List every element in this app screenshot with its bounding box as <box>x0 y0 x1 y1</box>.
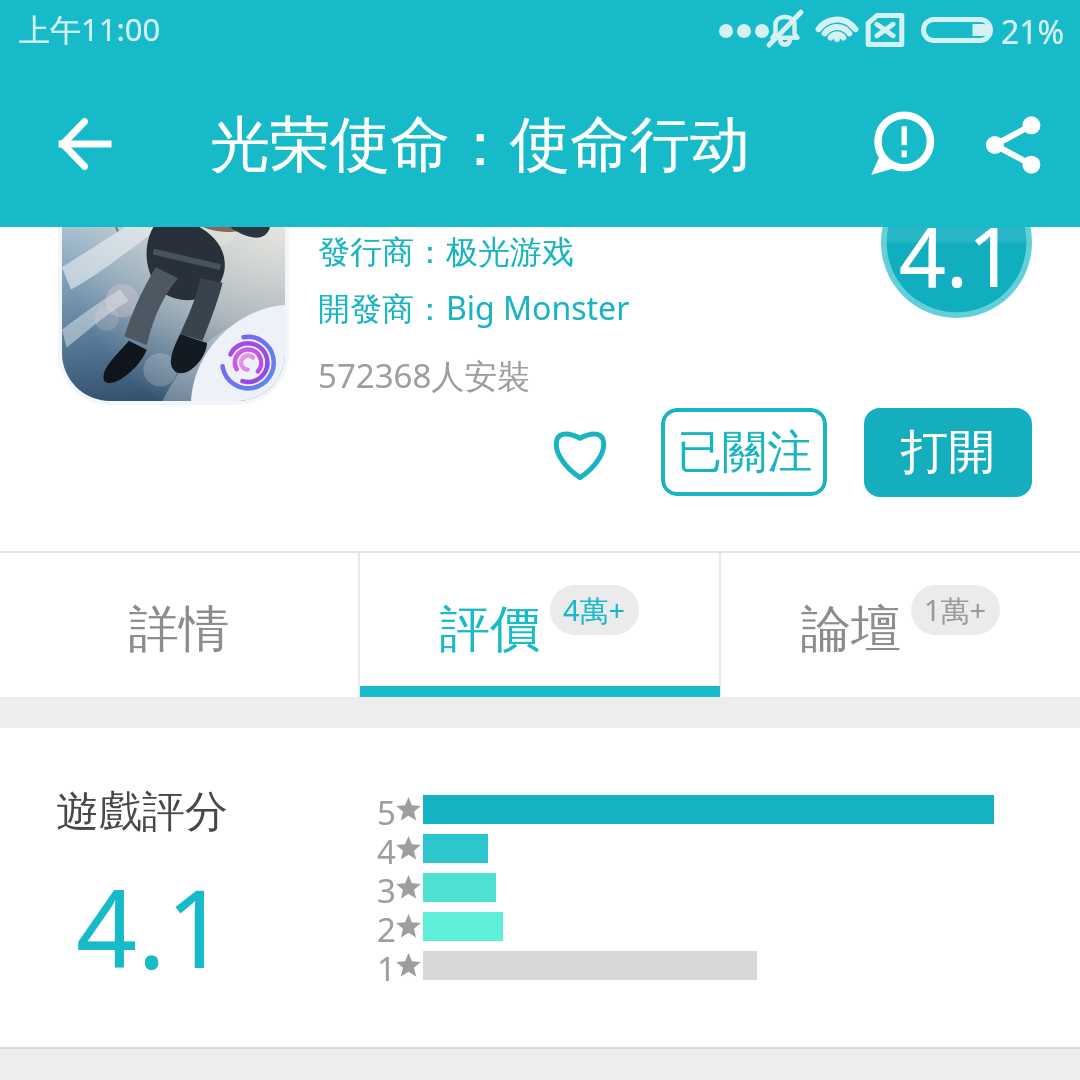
staticText: 4.1 <box>899 199 1015 311</box>
staticText: 4.1 <box>76 854 228 1000</box>
button[interactable]: Report <box>845 90 955 200</box>
button[interactable]: 已關注 <box>661 408 827 496</box>
staticText: 3 <box>377 868 396 907</box>
button[interactable]: 詳情 <box>0 553 358 697</box>
staticText: 21% <box>1001 10 1065 54</box>
staticText: 詳情 <box>129 598 229 661</box>
staticText: 1萬+ <box>924 590 987 630</box>
staticText: 打開 <box>901 423 995 482</box>
staticText: 遊戲評分 <box>56 785 228 839</box>
staticText: 上午11:00 <box>19 8 161 50</box>
staticText: 光荣使命：使命行动 <box>210 107 750 183</box>
button[interactable]: 評價 <box>360 553 719 697</box>
button[interactable]: Back <box>22 90 146 198</box>
staticText: 572368人安裝 <box>318 353 531 398</box>
staticText: 論壇 <box>801 598 901 661</box>
staticText: 4 <box>377 829 396 868</box>
staticText: 發行商：极光游戏 <box>318 232 574 272</box>
button[interactable]: Share <box>959 90 1069 200</box>
staticText: 2 <box>377 907 396 946</box>
button[interactable]: 打開 <box>864 408 1032 497</box>
staticText: 已關注 <box>677 424 812 481</box>
button[interactable]: Favorite <box>546 420 614 482</box>
staticText: 評價 <box>440 598 540 661</box>
staticText: 4萬+ <box>563 590 626 630</box>
staticText: 開發商：Big Monster <box>318 286 630 330</box>
staticText: 5 <box>377 790 396 829</box>
staticText: 1 <box>377 946 396 985</box>
button[interactable]: 論壇 <box>721 553 1080 697</box>
